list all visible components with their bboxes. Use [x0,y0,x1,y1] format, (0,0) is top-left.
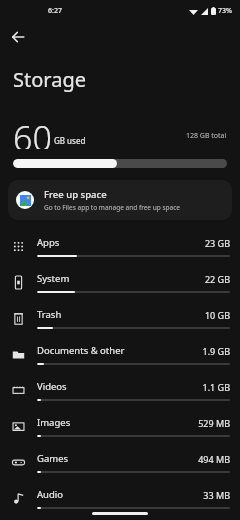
button[interactable]: Audio [0,480,240,516]
button[interactable]: Games [0,444,240,480]
staticText: Go to Files app to manage and free up sp… [44,203,180,212]
staticText: 1.9 GB [202,345,230,357]
staticText: Free up space [44,188,107,201]
button[interactable]: Videos [0,372,240,408]
staticText: 494 MB [198,453,230,465]
staticText: 60 [13,115,52,149]
staticText: Videos [37,380,202,393]
staticText: Documents & other [37,344,202,357]
button[interactable]: System [0,264,240,300]
staticText: System [37,272,204,285]
button[interactable]: Back [5,24,31,50]
button[interactable]: Trash [0,300,240,336]
staticText: Storage [13,66,86,93]
staticText: 22 GB [204,273,230,285]
staticText: 73% [218,6,232,16]
button[interactable]: Apps [0,228,240,264]
staticText: Apps [37,236,204,249]
staticText: 529 MB [198,417,230,429]
staticText: 1.1 GB [202,381,230,393]
staticText: 10 GB [204,309,230,321]
staticText: Trash [37,308,204,321]
staticText: GB used [54,135,86,146]
staticText: 128 GB total [186,131,227,141]
button[interactable]: Images [0,408,240,444]
button[interactable]: Free up space [8,180,232,220]
staticText: Images [37,416,198,429]
staticText: Audio [37,488,203,501]
staticText: 33 MB [203,489,230,501]
staticText: 6:27 [48,6,62,16]
button[interactable]: Documents & other [0,336,240,372]
staticText: Games [37,452,198,465]
staticText: 23 GB [204,237,230,249]
